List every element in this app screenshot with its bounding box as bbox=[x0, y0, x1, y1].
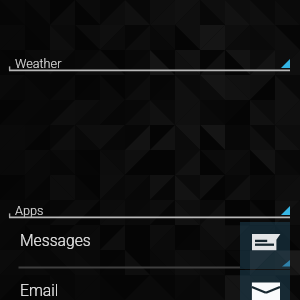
staticText: Messages bbox=[20, 231, 91, 249]
staticText: Weather bbox=[15, 56, 62, 71]
button[interactable]: Weather bbox=[0, 51, 300, 75]
button[interactable]: Email bbox=[0, 270, 300, 300]
other: Messages bbox=[240, 222, 290, 269]
staticText: Email bbox=[20, 281, 59, 299]
button[interactable]: Apps bbox=[0, 198, 300, 222]
button[interactable]: Messages bbox=[0, 222, 300, 269]
other: Email bbox=[240, 270, 290, 300]
staticText: Apps bbox=[15, 203, 44, 218]
